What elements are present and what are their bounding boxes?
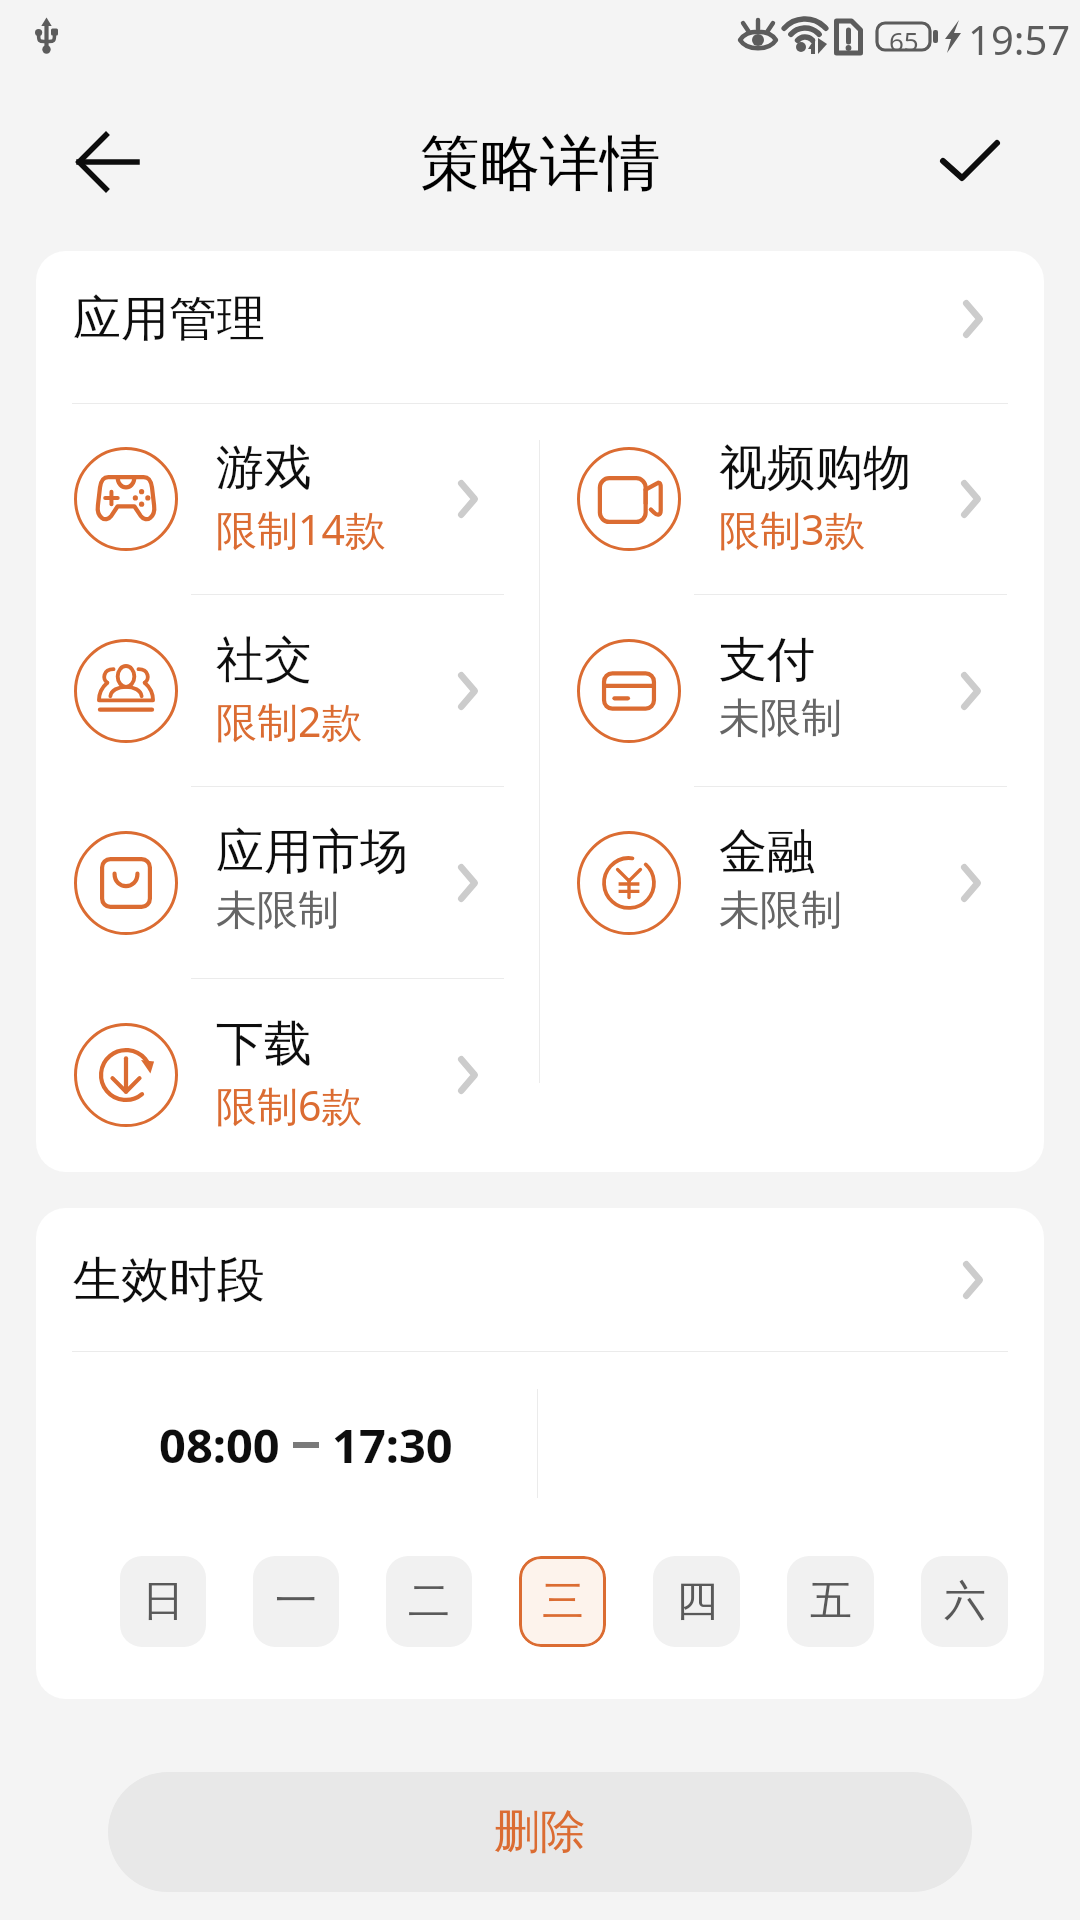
staticText: 删除 — [494, 1803, 586, 1861]
staticText: 限制6款 — [216, 1077, 363, 1133]
button[interactable]: 生效时段 — [36, 1208, 1044, 1351]
staticText: 一 — [275, 1575, 317, 1628]
staticText: 视频购物 — [719, 438, 911, 498]
button[interactable]: 五 — [787, 1556, 874, 1647]
button[interactable]: 二 — [386, 1556, 472, 1647]
staticText: 五 — [810, 1575, 852, 1628]
staticText: 支付 — [719, 630, 815, 690]
button[interactable]: 社交 — [36, 595, 541, 787]
button[interactable]: 六 — [921, 1556, 1008, 1647]
staticText: 策略详情 — [420, 126, 660, 202]
staticText: 65 — [889, 23, 919, 50]
staticText: 19:57 — [968, 12, 1071, 66]
button[interactable]: 一 — [253, 1556, 339, 1647]
button[interactable]: 四 — [653, 1556, 740, 1647]
staticText: 08:00 — [159, 1413, 280, 1477]
staticText: 三 — [542, 1575, 584, 1628]
button[interactable]: 日 — [120, 1556, 206, 1647]
button[interactable]: 支付 — [539, 595, 1044, 787]
staticText: 游戏 — [216, 438, 312, 498]
button[interactable]: 删除 — [108, 1772, 972, 1892]
staticText: 限制14款 — [216, 501, 386, 557]
staticText: 应用市场 — [216, 822, 408, 882]
staticText: 四 — [676, 1575, 718, 1628]
button[interactable]: Confirm — [930, 130, 1010, 210]
button[interactable]: 金融 — [539, 787, 1044, 979]
staticText: 未限制 — [216, 885, 339, 937]
staticText: 六 — [944, 1575, 986, 1628]
staticText: 生效时段 — [73, 1250, 265, 1310]
button[interactable]: 应用市场 — [36, 787, 541, 979]
staticText: 应用管理 — [73, 289, 265, 349]
button[interactable]: 下载 — [36, 979, 541, 1171]
staticText: 限制3款 — [719, 501, 866, 557]
button[interactable]: 游戏 — [36, 403, 541, 595]
staticText: 17:30 — [332, 1413, 453, 1477]
button[interactable]: 三 — [519, 1556, 606, 1647]
button[interactable]: 视频购物 — [539, 403, 1044, 595]
staticText: 二 — [408, 1575, 450, 1628]
staticText: 金融 — [719, 822, 815, 882]
staticText: 下载 — [216, 1014, 312, 1074]
button[interactable]: Back — [75, 130, 139, 194]
button[interactable]: 应用管理 — [36, 251, 1044, 403]
staticText: 限制2款 — [216, 693, 363, 749]
staticText: 社交 — [216, 630, 312, 690]
staticText: 未限制 — [719, 693, 842, 745]
staticText: 未限制 — [719, 885, 842, 937]
staticText: 日 — [142, 1575, 184, 1628]
